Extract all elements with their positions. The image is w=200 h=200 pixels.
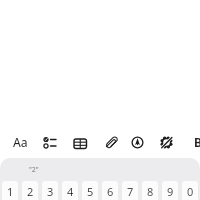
staticText: 9 [167, 184, 174, 199]
button[interactable]: 6 [102, 181, 118, 200]
button[interactable]: 5 [82, 181, 98, 200]
staticText: 3 [47, 184, 54, 199]
button[interactable] [40, 131, 58, 153]
staticText: 4 [67, 184, 74, 199]
staticText: 8 [147, 184, 154, 199]
button[interactable]: 8 [142, 181, 158, 200]
staticText: 6 [107, 184, 114, 199]
staticText: "2" [29, 165, 39, 175]
button[interactable]: 0 [182, 181, 198, 200]
button[interactable] [72, 131, 89, 153]
staticText: B [194, 134, 200, 150]
button[interactable]: 2 [22, 181, 38, 200]
button[interactable]: B [194, 131, 200, 153]
button[interactable]: 9 [162, 181, 178, 200]
button[interactable]: "2" [7, 159, 60, 180]
button[interactable]: 7 [122, 181, 138, 200]
button[interactable]: Aa [8, 131, 32, 153]
staticText: 5 [87, 184, 94, 199]
staticText: 7 [127, 184, 134, 199]
button[interactable] [129, 131, 146, 153]
staticText: 1 [7, 184, 14, 199]
button[interactable]: 1 [2, 181, 18, 200]
staticText: Aa [13, 134, 28, 150]
button[interactable] [103, 131, 120, 153]
button[interactable]: 4 [62, 181, 78, 200]
staticText: 0 [187, 184, 194, 199]
staticText: 2 [27, 184, 34, 199]
button[interactable]: 3 [42, 181, 58, 200]
button[interactable] [158, 131, 175, 153]
